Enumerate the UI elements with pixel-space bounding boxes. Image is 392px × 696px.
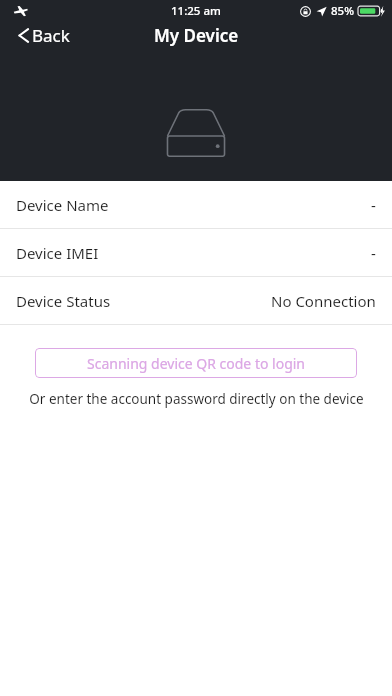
- staticText: Device IMEI: [16, 243, 99, 263]
- staticText: Device Status: [16, 291, 111, 311]
- button[interactable]: Device Name: [0, 181, 392, 228]
- staticText: No Connection: [271, 291, 376, 311]
- staticText: -: [371, 195, 376, 215]
- staticText: Device Name: [16, 195, 109, 215]
- staticText: My Device: [154, 24, 239, 47]
- staticText: -: [371, 243, 376, 263]
- staticText: Or enter the account password directly o…: [29, 390, 364, 408]
- button[interactable]: Back: [14, 21, 74, 50]
- staticText: 85%: [331, 3, 354, 19]
- staticText: Back: [32, 24, 70, 47]
- button[interactable]: Device Status: [0, 277, 392, 324]
- staticText: Scanning device QR code to login: [87, 354, 306, 373]
- button[interactable]: Device IMEI: [0, 229, 392, 276]
- staticText: 11:25 am: [171, 3, 221, 19]
- button[interactable]: Scanning device QR code to login: [35, 348, 357, 378]
